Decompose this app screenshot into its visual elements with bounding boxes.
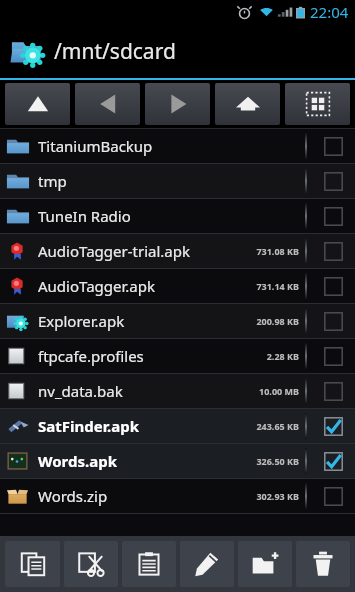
staticText: Explorer.apk bbox=[38, 311, 256, 331]
button[interactable]: tmp bbox=[0, 164, 355, 198]
button[interactable]: Paste bbox=[122, 541, 176, 587]
staticText: 200.98 KB bbox=[256, 315, 299, 327]
button[interactable]: Not selected bbox=[316, 374, 350, 408]
button[interactable]: Words.apk bbox=[0, 444, 355, 478]
button[interactable]: Delete bbox=[296, 541, 350, 587]
button[interactable]: ftpcafe.profiles bbox=[0, 339, 355, 373]
staticText: Words.zip bbox=[38, 486, 256, 506]
button[interactable]: Cut bbox=[64, 541, 118, 587]
staticText: AudioTagger-trial.apk bbox=[38, 241, 256, 261]
button[interactable]: nv_data.bak bbox=[0, 374, 355, 408]
staticText: Words.apk bbox=[38, 451, 256, 471]
staticText: 2.28 KB bbox=[266, 350, 299, 362]
button[interactable]: Rename bbox=[180, 541, 234, 587]
button[interactable]: Not selected bbox=[316, 129, 350, 163]
button[interactable]: New folder bbox=[238, 541, 292, 587]
staticText: TuneIn Radio bbox=[38, 206, 299, 226]
staticText: ftpcafe.profiles bbox=[38, 346, 266, 366]
button[interactable]: Not selected bbox=[316, 269, 350, 303]
button[interactable]: Home bbox=[215, 83, 280, 125]
button[interactable]: Selected bbox=[316, 444, 350, 478]
button[interactable]: Not selected bbox=[316, 479, 350, 513]
staticText: 731.14 KB bbox=[256, 280, 299, 292]
button[interactable]: Not selected bbox=[316, 199, 350, 233]
button[interactable]: Not selected bbox=[316, 339, 350, 373]
button[interactable]: Forward bbox=[145, 83, 210, 125]
button[interactable]: TitaniumBackup bbox=[0, 129, 355, 163]
staticText: nv_data.bak bbox=[38, 381, 259, 401]
button[interactable]: Explorer.apk bbox=[0, 304, 355, 338]
staticText: 22:04 bbox=[310, 2, 349, 22]
staticText: 326.50 KB bbox=[256, 455, 299, 467]
button[interactable]: SatFinder.apk bbox=[0, 409, 355, 443]
button[interactable]: Not selected bbox=[316, 164, 350, 198]
staticText: 10.00 MB bbox=[259, 385, 299, 397]
button[interactable]: Select all bbox=[285, 83, 350, 125]
button[interactable]: Not selected bbox=[316, 234, 350, 268]
staticText: SatFinder.apk bbox=[38, 416, 256, 436]
button[interactable]: Words.zip bbox=[0, 479, 355, 513]
staticText: TitaniumBackup bbox=[38, 136, 299, 156]
staticText: /mnt/sdcard bbox=[54, 37, 176, 66]
staticText: AudioTagger.apk bbox=[38, 276, 256, 296]
button[interactable]: Not selected bbox=[316, 304, 350, 338]
button[interactable]: AudioTagger.apk bbox=[0, 269, 355, 303]
button[interactable]: AudioTagger-trial.apk bbox=[0, 234, 355, 268]
button[interactable]: Back bbox=[75, 83, 140, 125]
button[interactable]: Up bbox=[5, 83, 70, 125]
staticText: tmp bbox=[38, 171, 299, 191]
button[interactable]: Copy bbox=[5, 541, 60, 587]
staticText: 731.08 KB bbox=[256, 245, 299, 257]
button[interactable]: Selected bbox=[316, 409, 350, 443]
button[interactable]: TuneIn Radio bbox=[0, 199, 355, 233]
staticText: 302.93 KB bbox=[256, 490, 299, 502]
staticText: 243.65 KB bbox=[256, 420, 299, 432]
